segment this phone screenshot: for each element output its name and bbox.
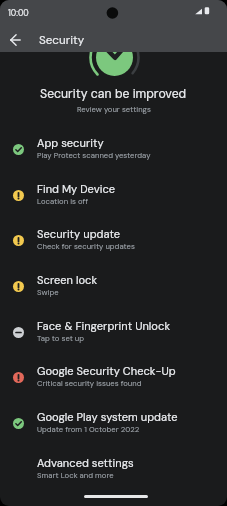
button[interactable]: Screen lock bbox=[0, 267, 227, 313]
staticText: Location is off bbox=[37, 196, 89, 206]
staticText: Security update bbox=[37, 227, 121, 241]
staticText: Check for security updates bbox=[37, 241, 135, 251]
staticText: Advanced settings bbox=[37, 456, 134, 470]
staticText: Smart Lock and more bbox=[37, 470, 114, 480]
staticText: Swipe bbox=[37, 287, 59, 297]
staticText: Face & Fingerprint Unlock bbox=[37, 319, 170, 333]
staticText: Critical security issues found bbox=[37, 378, 142, 388]
button[interactable]: Security update bbox=[0, 221, 227, 267]
staticText: Security can be improved bbox=[40, 86, 187, 102]
button[interactable]: Advanced settings bbox=[0, 450, 227, 496]
staticText: Security bbox=[39, 32, 85, 47]
button[interactable]: App security bbox=[0, 130, 227, 176]
staticText: 10:00 bbox=[8, 8, 29, 19]
staticText: Google Play system update bbox=[37, 410, 178, 424]
staticText: Find My Device bbox=[37, 182, 116, 196]
staticText: Google Security Check-Up bbox=[37, 364, 176, 378]
button[interactable]: Google Security Check-Up bbox=[0, 358, 227, 404]
staticText: Tap to set up bbox=[37, 333, 85, 343]
staticText: App security bbox=[37, 136, 104, 150]
staticText: Update from 1 October 2022 bbox=[37, 424, 140, 434]
button[interactable]: Find My Device bbox=[0, 176, 227, 222]
button[interactable]: Google Play system update bbox=[0, 404, 227, 450]
staticText: Screen lock bbox=[37, 273, 98, 287]
button[interactable] bbox=[0, 29, 30, 52]
button[interactable]: Face & Fingerprint Unlock bbox=[0, 313, 227, 359]
staticText: Review your settings bbox=[77, 104, 151, 114]
staticText: Play Protect scanned yesterday bbox=[37, 150, 151, 160]
